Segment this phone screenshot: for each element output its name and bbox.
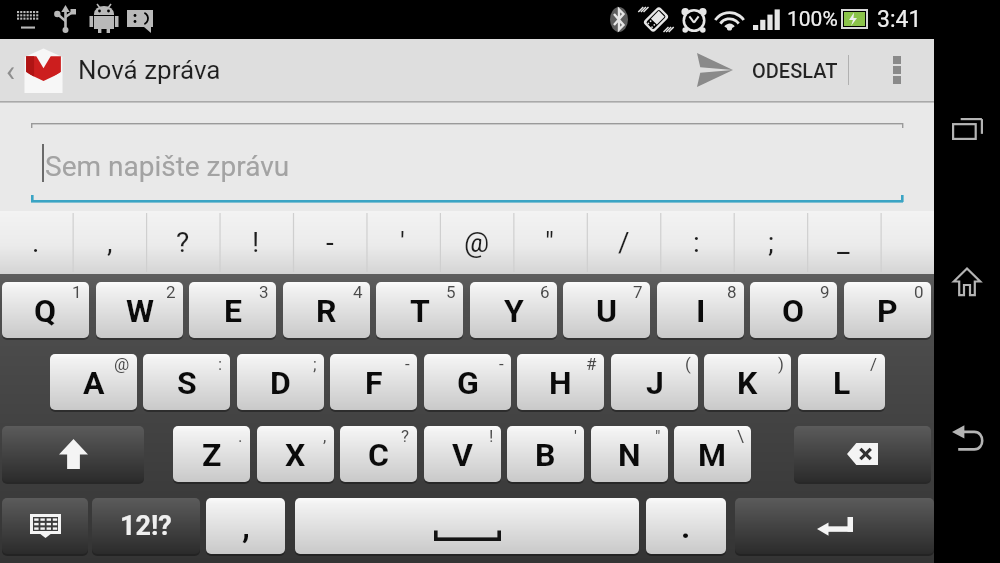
button[interactable]: C bbox=[340, 426, 417, 482]
staticText: ODESLAT bbox=[752, 59, 838, 82]
button[interactable]: Home bbox=[934, 243, 1000, 319]
button[interactable]: More options bbox=[862, 39, 932, 101]
button[interactable]: , bbox=[73, 211, 146, 274]
staticText: 4 bbox=[353, 282, 363, 302]
button[interactable]: B bbox=[507, 426, 584, 482]
button[interactable]: . bbox=[0, 211, 72, 274]
staticText: H bbox=[549, 364, 572, 402]
staticText: ‹ bbox=[6, 53, 16, 88]
staticText: - bbox=[405, 354, 410, 374]
staticText: ) bbox=[778, 354, 784, 374]
button[interactable]: Y bbox=[470, 282, 557, 338]
button[interactable]: ? bbox=[146, 211, 219, 274]
staticText: . bbox=[238, 426, 243, 446]
button[interactable]: Shift bbox=[2, 426, 144, 482]
button[interactable]: Recent apps bbox=[934, 91, 1000, 167]
button[interactable]: ! bbox=[219, 211, 292, 274]
button[interactable]: Hide keyboard bbox=[2, 498, 88, 554]
staticText: R bbox=[316, 292, 337, 330]
button[interactable]: ODESLAT bbox=[690, 39, 845, 101]
button[interactable]: Navigate up bbox=[0, 39, 74, 101]
button[interactable]: D bbox=[237, 354, 324, 410]
staticText: Z bbox=[202, 436, 222, 474]
button[interactable]: A bbox=[50, 354, 137, 410]
staticText: 100% bbox=[787, 7, 838, 32]
staticText: , bbox=[107, 226, 113, 259]
staticText: ' bbox=[400, 226, 405, 259]
button[interactable]: V bbox=[424, 426, 501, 482]
button[interactable]: G bbox=[424, 354, 511, 410]
button[interactable]: X bbox=[257, 426, 334, 482]
staticText: ! bbox=[252, 226, 260, 259]
button[interactable]: 12!? bbox=[92, 498, 200, 554]
staticText: " bbox=[545, 226, 554, 259]
staticText: 9 bbox=[820, 282, 830, 302]
staticText: ! bbox=[489, 426, 494, 446]
button[interactable]: Q bbox=[2, 282, 89, 338]
staticText: # bbox=[586, 354, 597, 374]
staticText: 0 bbox=[914, 282, 924, 302]
button[interactable]: . bbox=[646, 498, 726, 554]
staticText: . bbox=[681, 508, 691, 546]
staticText: , bbox=[242, 508, 250, 546]
button[interactable]: ' bbox=[366, 211, 439, 274]
button[interactable]: N bbox=[591, 426, 668, 482]
button[interactable]: W bbox=[96, 282, 183, 338]
button[interactable]: @ bbox=[440, 211, 513, 274]
staticText: W bbox=[126, 292, 154, 330]
staticText: ? bbox=[401, 426, 410, 446]
button[interactable]: L bbox=[798, 354, 885, 410]
staticText: E bbox=[224, 292, 242, 330]
staticText: ( bbox=[685, 354, 691, 374]
button[interactable]: : bbox=[660, 211, 733, 274]
button[interactable]: J bbox=[611, 354, 698, 410]
button[interactable]: ; bbox=[734, 211, 807, 274]
staticText: 5 bbox=[446, 282, 456, 302]
button[interactable]: F bbox=[330, 354, 417, 410]
staticText: F bbox=[365, 364, 383, 402]
button[interactable]: I bbox=[657, 282, 744, 338]
staticText: . bbox=[32, 226, 40, 259]
staticText: / bbox=[618, 226, 630, 259]
staticText: , bbox=[323, 426, 327, 446]
button[interactable]: Z bbox=[173, 426, 250, 482]
button[interactable]: , bbox=[206, 498, 285, 554]
button[interactable]: E bbox=[189, 282, 276, 338]
staticText: - bbox=[499, 354, 504, 374]
staticText: X bbox=[285, 436, 306, 474]
staticText: Q bbox=[34, 292, 57, 330]
staticText: P bbox=[877, 292, 898, 330]
button[interactable] bbox=[295, 498, 639, 554]
button[interactable]: O bbox=[750, 282, 837, 338]
staticText: M bbox=[698, 436, 727, 474]
staticText: O bbox=[782, 292, 805, 330]
staticText: : bbox=[693, 226, 700, 259]
button[interactable]: K bbox=[704, 354, 791, 410]
staticText: ? bbox=[176, 226, 190, 259]
staticText: - bbox=[326, 226, 334, 259]
button[interactable]: S bbox=[143, 354, 230, 410]
staticText: @ bbox=[464, 226, 490, 259]
button[interactable]: M bbox=[674, 426, 751, 482]
button[interactable]: H bbox=[517, 354, 604, 410]
button[interactable]: / bbox=[587, 211, 660, 274]
staticText: ; bbox=[313, 354, 317, 374]
staticText: T bbox=[410, 292, 430, 330]
button[interactable]: T bbox=[376, 282, 463, 338]
button[interactable]: P bbox=[844, 282, 931, 338]
staticText: 7 bbox=[633, 282, 643, 302]
staticText: I bbox=[696, 292, 706, 330]
button[interactable]: Enter bbox=[735, 498, 934, 554]
button[interactable]: U bbox=[563, 282, 650, 338]
button[interactable]: _ bbox=[807, 211, 880, 274]
staticText: \ bbox=[737, 426, 744, 446]
button[interactable]: " bbox=[513, 211, 586, 274]
staticText: U bbox=[596, 292, 618, 330]
button[interactable]: Delete bbox=[794, 426, 931, 482]
button[interactable]: R bbox=[283, 282, 370, 338]
staticText: G bbox=[457, 364, 479, 402]
staticText: C bbox=[368, 436, 389, 474]
staticText: V bbox=[452, 436, 473, 474]
button[interactable]: - bbox=[293, 211, 366, 274]
button[interactable]: Back bbox=[934, 401, 1000, 477]
